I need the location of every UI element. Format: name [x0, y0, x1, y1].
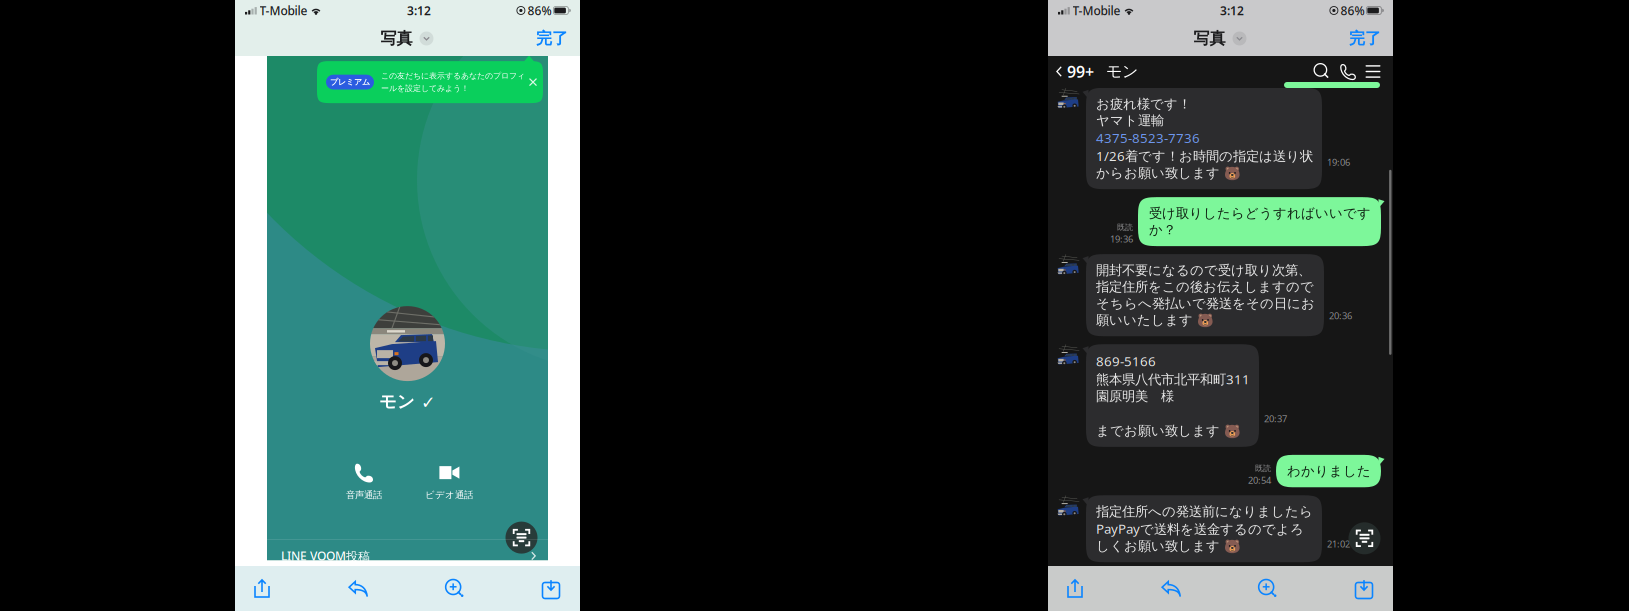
staticText: 19:06 — [1327, 156, 1350, 168]
button[interactable]: ビデオ通話 — [419, 462, 479, 501]
button[interactable]: Share — [248, 566, 276, 610]
staticText: 写真 — [380, 29, 412, 48]
staticText: この友だちに表示するあなたのプロフィ — [381, 71, 525, 81]
staticText: 園原明美 様 — [1096, 388, 1174, 404]
staticText: わかりました — [1287, 463, 1371, 479]
staticText: 1/26着です！お時間の指定は送り状 — [1096, 147, 1313, 165]
button[interactable]: Markup — [441, 566, 469, 610]
staticText: 完了 — [1349, 29, 1381, 48]
staticText: 音声通話 — [346, 489, 382, 501]
staticText: 3:12 — [1220, 2, 1244, 18]
staticText: T-Mobile — [259, 2, 307, 18]
staticText: 86% — [1340, 2, 1364, 18]
button[interactable]: 99+ — [1048, 56, 1098, 86]
button[interactable]: Live Text — [505, 521, 538, 554]
staticText: LINE VOOM投稿 — [281, 548, 370, 564]
staticText: 受け取りしたらどうすればいいです — [1149, 205, 1371, 222]
staticText: 3:12 — [407, 2, 431, 18]
staticText: プレミアム — [330, 77, 370, 87]
button[interactable]: Call — [1335, 56, 1361, 86]
staticText: 指定住所への発送前になりましたら — [1096, 503, 1313, 520]
staticText: 86% — [527, 2, 551, 18]
button[interactable]: Markup — [1254, 566, 1282, 610]
staticText: 既読 — [1255, 463, 1271, 473]
button[interactable]: Live Text — [1348, 522, 1381, 555]
button[interactable]: 音声通話 — [334, 462, 394, 501]
staticText: 熊本県八代市北平和町311 — [1096, 370, 1250, 388]
staticText: 21:02 — [1327, 538, 1350, 550]
staticText: 願いいたします 🐻 — [1096, 312, 1214, 328]
staticText: までお願い致します 🐻 — [1096, 422, 1241, 439]
button[interactable]: Reply — [344, 566, 372, 610]
staticText: 20:54 — [1248, 474, 1271, 486]
staticText: か？ — [1149, 222, 1176, 238]
staticText: PayPayで送料を送金するのでよろ — [1096, 520, 1304, 538]
button[interactable]: Save — [537, 566, 565, 610]
button[interactable]: Photo options — [418, 30, 434, 46]
button[interactable]: Share — [1061, 566, 1089, 610]
button[interactable]: Menu — [1361, 56, 1385, 86]
staticText: からお願い致します 🐻 — [1096, 165, 1241, 181]
staticText: 19:36 — [1110, 233, 1133, 245]
staticText: 20:37 — [1264, 412, 1287, 425]
staticText: モン — [1106, 62, 1138, 81]
staticText: 99+ — [1067, 61, 1094, 82]
staticText: 開封不要になるので受け取り次第、 — [1096, 262, 1311, 278]
staticText: しくお願い致します 🐻 — [1096, 538, 1241, 554]
staticText: 20:36 — [1329, 309, 1352, 322]
button[interactable]: Reply — [1157, 566, 1185, 610]
staticText: 写真 — [1193, 29, 1225, 48]
staticText: モン ✓ — [379, 391, 436, 412]
staticText: ビデオ通話 — [425, 489, 473, 501]
staticText: 869-5166 — [1096, 352, 1156, 370]
button[interactable]: Photo options — [1231, 30, 1247, 46]
button[interactable]: 完了 — [524, 21, 580, 55]
staticText: 完了 — [536, 29, 568, 48]
staticText: お疲れ様です！ — [1096, 96, 1191, 112]
staticText: T-Mobile — [1072, 2, 1120, 18]
staticText: ールを設定してみよう！ — [381, 83, 469, 93]
staticText: 4375-8523-7736 — [1096, 129, 1200, 147]
button[interactable]: Search — [1309, 56, 1335, 86]
button[interactable]: 完了 — [1337, 21, 1393, 55]
button[interactable]: Dismiss — [525, 74, 541, 90]
staticText: そちらへ発払いで発送をその日にお — [1096, 295, 1315, 312]
staticText: 指定住所をこの後お伝えしますので — [1096, 279, 1314, 295]
staticText: ヤマト運輸 — [1096, 112, 1164, 129]
button[interactable]: Save — [1350, 566, 1378, 610]
staticText: 既読 — [1117, 222, 1133, 232]
